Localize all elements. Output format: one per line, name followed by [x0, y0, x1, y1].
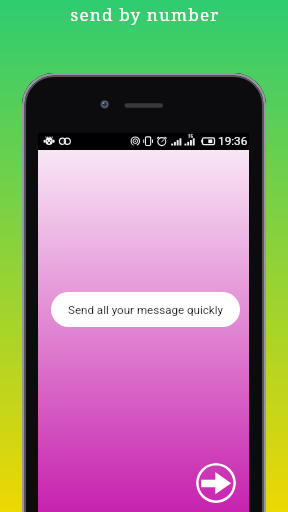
- staticText: 19:36: [218, 134, 248, 148]
- button[interactable]: Send all your message quickly: [51, 292, 240, 327]
- staticText: send by number: [1, 3, 288, 26]
- staticText: Send all your message quickly: [68, 303, 224, 317]
- button[interactable]: Send: [196, 463, 236, 503]
